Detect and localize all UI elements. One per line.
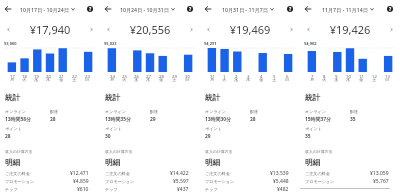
button[interactable]: チップ: [205, 185, 295, 193]
staticText: 9: [335, 73, 338, 79]
staticText: ¥3,000: [4, 41, 17, 46]
button[interactable]: チップ: [5, 185, 95, 193]
staticText: 明細: [5, 158, 21, 168]
staticText: 火: [22, 77, 27, 82]
staticText: ¥5,023: [104, 41, 117, 46]
button[interactable]: ご注文の料金: [305, 169, 395, 177]
staticText: 15時間37分: [305, 116, 331, 123]
button[interactable]: 収入の計算方法: [305, 149, 333, 154]
staticText: 水: [334, 77, 339, 82]
button[interactable]: 次の週: [287, 25, 296, 34]
button[interactable]: 収入の計算方法: [5, 149, 33, 154]
button[interactable]: 戻る: [300, 0, 315, 18]
staticText: プロモーション: [205, 179, 235, 184]
staticText: ¥5,767: [373, 178, 389, 185]
staticText: 12: [372, 73, 377, 79]
staticText: 28: [159, 73, 164, 79]
staticText: 13時間35分: [105, 116, 131, 123]
button[interactable]: 11月7日 - 11月14日: [315, 0, 380, 18]
staticText: 21: [59, 73, 64, 79]
staticText: チップ: [205, 187, 218, 192]
button[interactable]: プロモーション: [205, 177, 295, 185]
staticText: 統計: [305, 93, 321, 103]
staticText: オンライン: [5, 109, 26, 114]
staticText: ?: [389, 6, 392, 12]
staticText: 17: [10, 73, 15, 79]
button[interactable]: 前の週: [204, 25, 213, 34]
staticText: 金: [59, 77, 64, 82]
staticText: 明細: [205, 158, 221, 168]
staticText: 24: [110, 73, 115, 79]
staticText: 20: [46, 73, 51, 79]
staticText: 木: [46, 77, 51, 82]
staticText: ご注文の料金: [205, 171, 230, 176]
staticText: プロモーション: [305, 179, 335, 184]
staticText: 4: [260, 73, 263, 79]
staticText: ¥4,291: [204, 41, 217, 46]
staticText: ?: [89, 6, 92, 12]
button[interactable]: 前の週: [304, 25, 313, 34]
button[interactable]: ご注文の料金: [205, 169, 295, 177]
button[interactable]: 前の週: [104, 25, 113, 34]
staticText: 35: [305, 133, 311, 140]
staticText: 月: [10, 77, 15, 82]
staticText: 11月7日 - 11月14日: [322, 6, 368, 13]
button[interactable]: 10月31日 - 11月7日: [215, 0, 280, 18]
staticText: ご注文の料金: [105, 171, 130, 176]
button[interactable]: 10月17日 - 10月24日: [15, 0, 80, 18]
button[interactable]: 10月24日 - 10月31日: [115, 0, 180, 18]
button[interactable]: ヘルプ: [280, 0, 300, 18]
button[interactable]: プロモーション: [105, 177, 195, 185]
staticText: 統計: [105, 93, 121, 103]
button[interactable]: プロモーション: [305, 177, 395, 185]
button[interactable]: 前の週: [4, 25, 13, 34]
staticText: 土: [72, 77, 77, 82]
button[interactable]: 戻る: [100, 0, 115, 18]
staticText: 29: [205, 133, 211, 140]
staticText: ¥5,448: [273, 178, 289, 185]
button[interactable]: プロモーション: [5, 177, 95, 185]
button[interactable]: 収入の計算方法: [205, 149, 233, 154]
staticText: 土: [272, 77, 277, 82]
staticText: 1: [223, 73, 226, 79]
button[interactable]: ヘルプ: [180, 0, 200, 18]
staticText: 10月17日 - 10月24日: [20, 6, 69, 13]
staticText: ¥610: [77, 186, 89, 193]
button[interactable]: ヘルプ: [80, 0, 100, 18]
button[interactable]: 次の週: [387, 25, 396, 34]
staticText: 配達: [250, 109, 259, 114]
staticText: 22: [72, 73, 77, 79]
button[interactable]: 戻る: [0, 0, 15, 18]
staticText: 6: [286, 73, 289, 79]
button[interactable]: ご注文の料金: [105, 169, 195, 177]
staticText: 水: [134, 77, 139, 82]
staticText: 25: [122, 73, 127, 79]
button[interactable]: 収入の計算方法: [105, 149, 133, 154]
staticText: 木: [346, 77, 351, 82]
staticText: 28: [5, 133, 11, 140]
staticText: 11: [359, 73, 364, 79]
staticText: 配達: [150, 109, 159, 114]
staticText: 10月24日 - 10月31日: [120, 6, 169, 13]
staticText: 月: [110, 77, 115, 82]
staticText: 18: [22, 73, 27, 79]
staticText: 23: [85, 73, 90, 79]
staticText: ¥5,597: [173, 178, 189, 185]
staticText: 35: [350, 116, 356, 123]
staticText: ¥12,471: [70, 170, 89, 177]
button[interactable]: 次の週: [187, 25, 196, 34]
button[interactable]: 次の週: [87, 25, 96, 34]
button[interactable]: ご注文の料金: [5, 169, 95, 177]
button[interactable]: チップ: [105, 185, 195, 193]
staticText: ¥19,426: [313, 22, 387, 37]
button[interactable]: ヘルプ: [380, 0, 400, 18]
staticText: 木: [246, 77, 251, 82]
staticText: チップ: [105, 187, 118, 192]
staticText: 明細: [305, 158, 321, 168]
staticText: 日: [285, 77, 290, 82]
staticText: 19: [34, 73, 39, 79]
staticText: 土: [172, 77, 177, 82]
staticText: オンライン: [105, 109, 126, 114]
staticText: ¥14,422: [170, 170, 189, 177]
button[interactable]: 戻る: [200, 0, 215, 18]
